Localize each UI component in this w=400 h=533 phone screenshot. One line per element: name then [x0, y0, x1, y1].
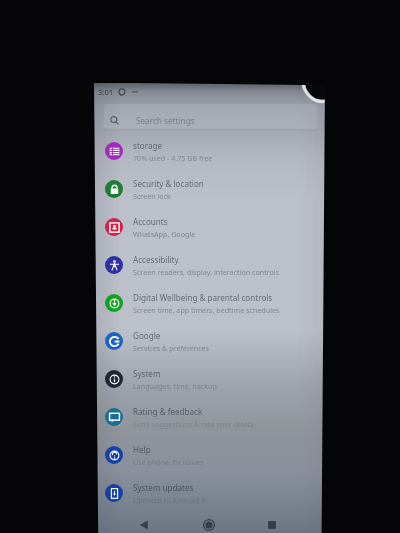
button[interactable]: Home	[198, 517, 219, 533]
staticText: Accounts	[133, 216, 168, 227]
button[interactable]: Back	[133, 517, 154, 533]
staticText: 3:01	[98, 87, 114, 97]
staticText: Digital Wellbeing & parental controls	[133, 292, 273, 303]
staticText: storage	[133, 140, 162, 151]
staticText: Rating & feedback	[133, 406, 203, 417]
button[interactable]: System updates	[94, 474, 325, 512]
staticText: Google	[133, 330, 161, 341]
staticText: Search settings	[136, 115, 195, 126]
button[interactable]: storage	[94, 132, 325, 170]
button[interactable]: System	[94, 360, 325, 398]
button[interactable]: Accessibility	[94, 246, 325, 284]
staticText: System updates	[133, 482, 194, 493]
button[interactable]: Rating & feedback	[94, 398, 325, 436]
staticText: 70% used - 4.75 GB free	[133, 153, 213, 163]
button[interactable]: Google	[94, 322, 325, 360]
staticText: Updated to Android 9	[133, 495, 206, 505]
staticText: Help	[133, 444, 151, 455]
staticText: Screen lock	[133, 191, 171, 201]
staticText: Use phone, fix issues	[133, 457, 204, 467]
button[interactable]: Search settings	[94, 100, 325, 132]
button[interactable]: Help	[94, 436, 325, 474]
staticText: Screen time, app timers, bedtime schedul…	[133, 305, 280, 315]
button[interactable]: Recents	[261, 517, 282, 533]
staticText: WhatsApp, Google	[133, 229, 196, 239]
button[interactable]: Accounts	[94, 208, 325, 246]
staticText: System	[133, 368, 161, 379]
staticText: Security & location	[133, 178, 204, 189]
staticText: Screen readers, display, interaction con…	[133, 267, 280, 277]
staticText: Accessibility	[133, 254, 179, 265]
staticText: Services & preferences	[133, 343, 210, 353]
button[interactable]: Digital Wellbeing & parental controls	[94, 284, 325, 322]
button[interactable]: Security & location	[94, 170, 325, 208]
staticText: Send suggestions & rate your device	[133, 419, 255, 429]
staticText: Languages, time, backup	[133, 381, 217, 391]
